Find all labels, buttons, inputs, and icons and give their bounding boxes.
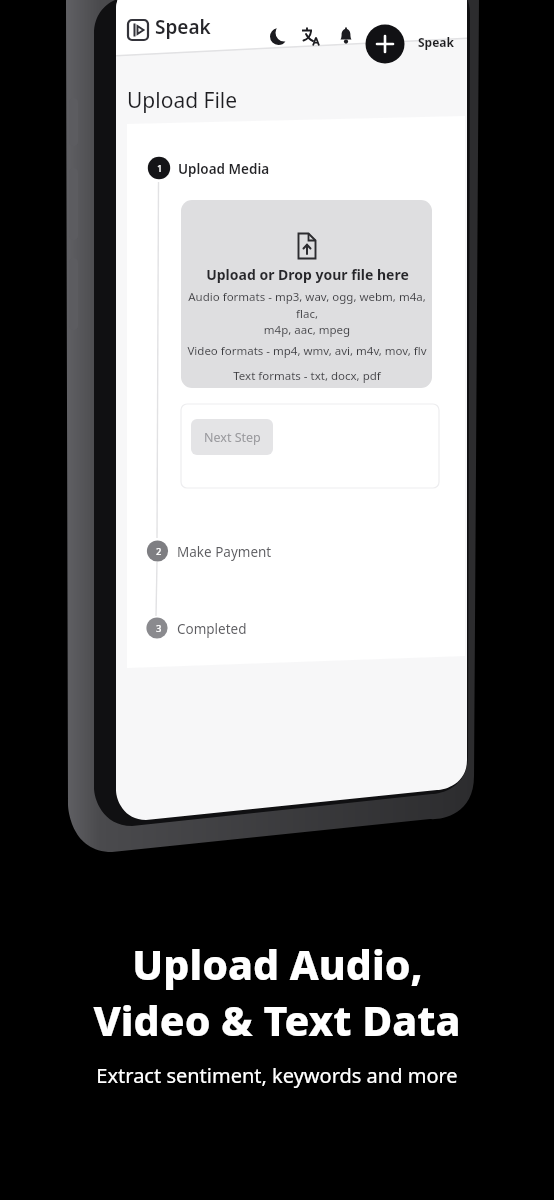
button[interactable]: Next Step — [191, 419, 273, 455]
staticText: Speak — [155, 14, 211, 40]
staticText: 2 — [156, 545, 162, 558]
staticText: Audio formats - mp3, wav, ogg, webm, m4a… — [181, 289, 433, 337]
staticText: Make Payment — [177, 543, 272, 561]
button[interactable]: Speak — [418, 34, 454, 50]
staticText: Completed — [177, 620, 247, 638]
staticText: Video formats - mp4, wmv, avi, m4v, mov,… — [187, 343, 427, 359]
button[interactable]: Completed — [177, 620, 247, 638]
button[interactable]: Upload or drop your file here — [181, 200, 432, 388]
staticText: Video & Text Data — [93, 992, 461, 1048]
button[interactable]: Dark mode — [263, 22, 293, 52]
staticText: Text formats - txt, docx, pdf — [233, 368, 381, 384]
button[interactable]: New — [366, 25, 405, 64]
button[interactable]: Upload Media — [178, 160, 270, 178]
staticText: Speak — [418, 34, 454, 50]
button[interactable]: Notifications — [332, 22, 362, 52]
staticText: Extract sentiment, keywords and more — [96, 1062, 458, 1089]
button[interactable]: Speak — [121, 14, 211, 40]
staticText: Upload Audio, — [132, 936, 423, 992]
staticText: 3 — [156, 622, 162, 635]
staticText: Upload File — [127, 86, 238, 115]
staticText: Upload or Drop your file here — [206, 265, 409, 284]
button[interactable]: Make Payment — [177, 543, 272, 561]
button[interactable]: Translate — [296, 22, 326, 52]
staticText: Upload Media — [178, 160, 270, 178]
staticText: Next Step — [204, 429, 261, 446]
staticText: 1 — [157, 162, 163, 175]
